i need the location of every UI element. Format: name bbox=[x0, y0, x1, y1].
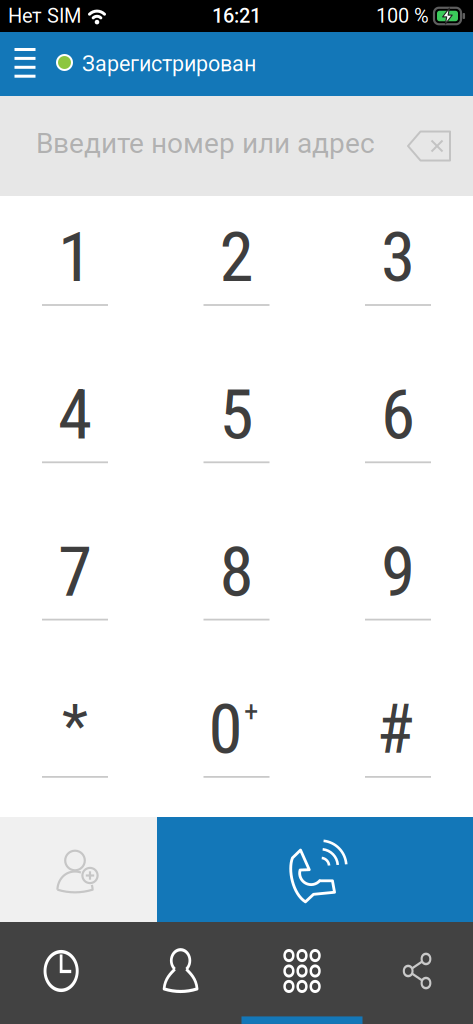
staticText: 2 bbox=[219, 217, 253, 298]
button[interactable]: Зарегистрирован bbox=[50, 32, 256, 96]
button[interactable]: Ещё bbox=[355, 923, 473, 1018]
button[interactable]: Клавиатура bbox=[236, 923, 355, 1018]
staticText: 6 bbox=[381, 374, 415, 455]
button[interactable]: 7 bbox=[0, 506, 158, 662]
staticText: 16:21 bbox=[212, 4, 261, 28]
staticText: 100 % bbox=[376, 4, 429, 28]
button[interactable]: 1 bbox=[0, 196, 158, 351]
button[interactable]: 8 bbox=[158, 506, 315, 662]
staticText: Зарегистрирован bbox=[82, 51, 256, 77]
button[interactable]: 2 bbox=[158, 196, 315, 351]
button[interactable]: * bbox=[0, 662, 158, 817]
button[interactable]: Меню bbox=[0, 32, 50, 96]
staticText: 3 bbox=[381, 217, 415, 298]
staticText: 1 bbox=[58, 217, 92, 298]
staticText: * bbox=[62, 690, 88, 760]
staticText: 7 bbox=[58, 532, 92, 613]
button[interactable]: Контакты bbox=[118, 923, 236, 1018]
button[interactable]: 5 bbox=[158, 351, 315, 506]
button[interactable]: 4 bbox=[0, 351, 158, 506]
button[interactable]: 0 bbox=[158, 662, 315, 817]
staticText: + bbox=[244, 695, 258, 729]
button[interactable]: Удалить bbox=[399, 96, 473, 196]
staticText: # bbox=[376, 690, 413, 769]
button[interactable]: 9 bbox=[315, 506, 473, 662]
button[interactable]: Позвонить bbox=[157, 817, 473, 922]
button[interactable]: # bbox=[315, 662, 473, 817]
staticText: 4 bbox=[58, 374, 92, 455]
staticText: 8 bbox=[219, 532, 253, 613]
staticText: 5 bbox=[219, 374, 253, 455]
staticText: Нет SIM bbox=[8, 4, 81, 28]
button[interactable]: 6 bbox=[315, 351, 473, 506]
staticText: Введите номер или адрес bbox=[36, 127, 375, 160]
staticText: 0 bbox=[208, 689, 242, 770]
button[interactable]: 3 bbox=[315, 196, 473, 351]
button[interactable]: История bbox=[0, 923, 118, 1018]
button[interactable]: Добавить контакт bbox=[0, 817, 157, 922]
staticText: 9 bbox=[381, 532, 415, 613]
